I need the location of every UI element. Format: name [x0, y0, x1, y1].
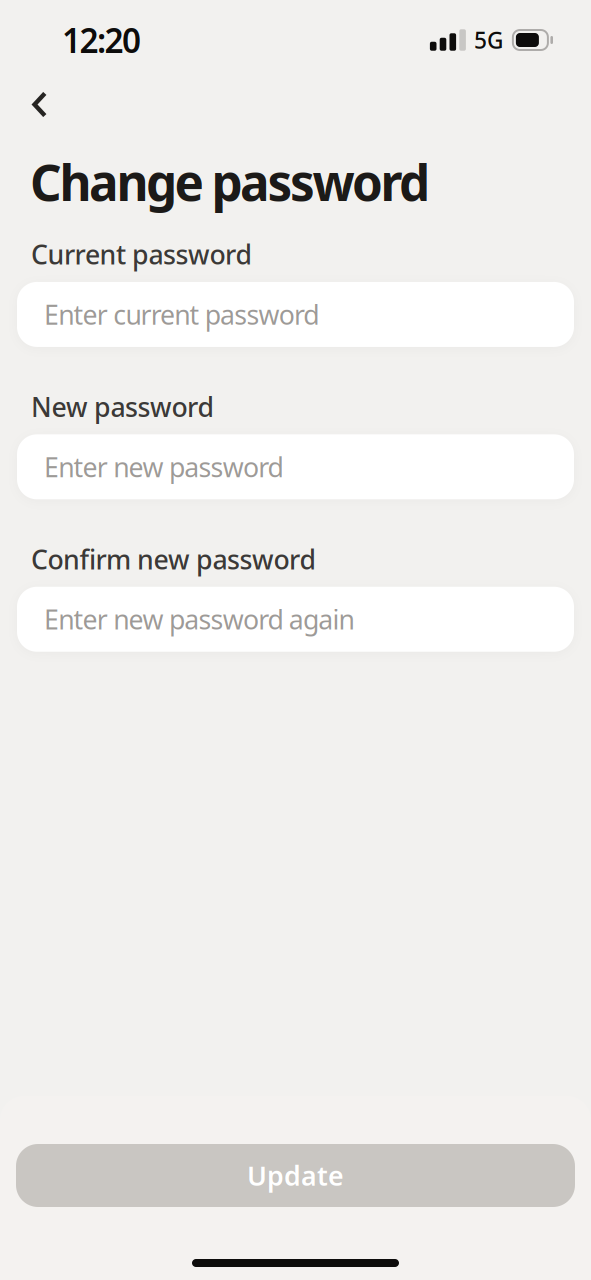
staticText: Update [247, 1158, 344, 1193]
staticText: 5G [474, 25, 503, 55]
button[interactable]: Enter current password [17, 282, 574, 347]
staticText: Confirm new password [31, 541, 316, 577]
button[interactable]: Update [16, 1144, 575, 1207]
button[interactable]: Enter new password [17, 434, 574, 499]
staticText: Enter new password again [44, 601, 355, 637]
staticText: Enter current password [44, 297, 319, 332]
staticText: Enter new password [44, 449, 283, 484]
staticText: Change password [30, 149, 430, 214]
staticText: 12:20 [62, 18, 141, 62]
button[interactable]: Enter new password again [17, 587, 574, 652]
staticText: Current password [31, 236, 252, 272]
button[interactable]: Back [0, 67, 47, 118]
staticText: New password [31, 389, 214, 424]
